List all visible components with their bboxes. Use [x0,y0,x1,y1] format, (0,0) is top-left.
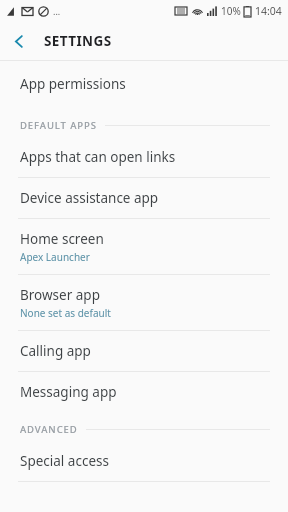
button[interactable]: Back [0,22,38,60]
staticText: Calling app [20,342,91,360]
button[interactable]: Calling app [0,331,288,371]
button[interactable]: Special access [0,442,288,481]
staticText: ... [53,5,61,17]
staticText: Device assistance app [20,189,159,207]
button[interactable]: Device assistance app [0,178,288,218]
staticText: Apex Launcher [20,250,90,264]
staticText: Apps that can open links [20,148,176,166]
staticText: DEFAULT APPS [20,119,97,132]
staticText: Special access [20,452,109,470]
button[interactable]: Messaging app [0,372,288,412]
button[interactable]: Browser app [0,275,288,330]
staticText: App permissions [20,75,126,93]
staticText: Messaging app [20,383,117,401]
staticText: 14:04 [255,4,282,18]
staticText: None set as default [20,306,111,320]
staticText: 10% [221,4,241,18]
button[interactable]: App permissions [0,61,288,107]
staticText: Home screen [20,230,104,248]
staticText: ADVANCED [20,423,78,436]
button[interactable]: Home screen [0,219,288,274]
staticText: SETTINGS [44,32,112,50]
button[interactable]: Apps that can open links [0,138,288,177]
staticText: Browser app [20,286,100,304]
